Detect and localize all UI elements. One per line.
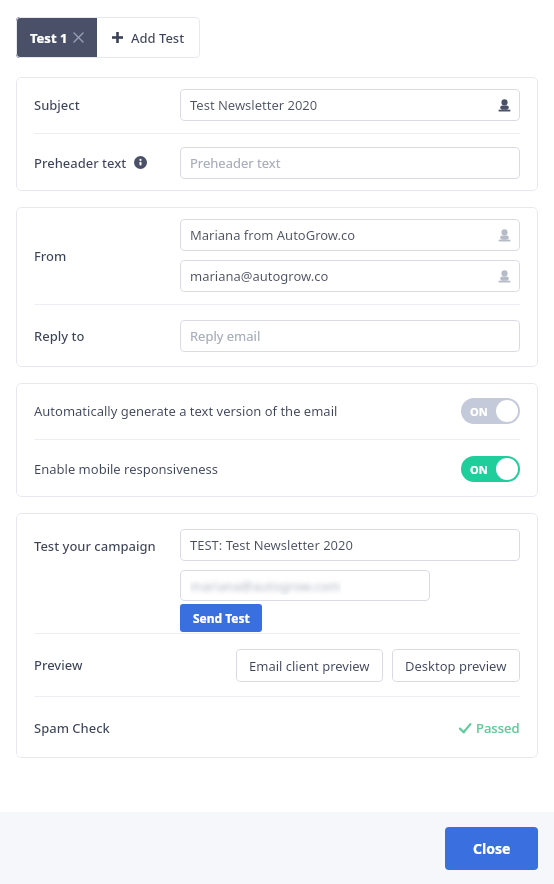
staticText: Reply to: [34, 327, 85, 345]
staticText: Close: [473, 839, 511, 858]
staticText: mariana@autogrow.com: [190, 577, 341, 595]
button[interactable]: Test 1: [16, 17, 97, 58]
staticText: mariana@autogrow.co: [190, 267, 329, 285]
staticText: From: [34, 247, 67, 265]
staticText: TEST: Test Newsletter 2020: [190, 536, 353, 554]
button[interactable]: mariana@autogrow.co: [180, 260, 520, 292]
button[interactable]: Test Newsletter 2020: [180, 89, 520, 121]
button[interactable]: Email client preview: [236, 649, 383, 682]
staticText: Preheader text: [34, 154, 127, 172]
button[interactable]: Toggle on: [461, 456, 520, 482]
staticText: Automatically generate a text version of…: [34, 402, 338, 420]
button[interactable]: TEST: Test Newsletter 2020: [180, 529, 520, 561]
button[interactable]: Toggle: [461, 398, 520, 424]
button[interactable]: Send Test: [180, 604, 262, 632]
staticText: Preheader text: [190, 154, 281, 172]
staticText: Desktop preview: [405, 657, 507, 675]
button[interactable]: Reply email: [180, 320, 520, 352]
staticText: Email client preview: [249, 657, 370, 675]
staticText: ON: [470, 462, 488, 477]
staticText: Mariana from AutoGrow.co: [190, 226, 356, 244]
staticText: Spam Check: [34, 719, 110, 737]
button[interactable]: Desktop preview: [392, 649, 520, 682]
button[interactable]: Add Test: [97, 17, 200, 58]
staticText: Send Test: [193, 610, 250, 626]
button[interactable]: mariana@autogrow.com: [180, 570, 430, 601]
staticText: Test your campaign: [34, 537, 156, 555]
other: Info: [134, 156, 147, 169]
other: Close tab: [74, 33, 83, 42]
staticText: Subject: [34, 96, 80, 114]
button[interactable]: Preheader text: [180, 147, 520, 179]
staticText: ON: [470, 404, 488, 419]
button[interactable]: Automatically generate a text version of…: [16, 383, 538, 439]
staticText: Reply email: [190, 327, 261, 345]
staticText: Passed: [476, 719, 520, 737]
button[interactable]: Mariana from AutoGrow.co: [180, 219, 520, 251]
staticText: Preview: [34, 656, 83, 674]
button[interactable]: Enable mobile responsiveness: [16, 440, 538, 497]
button[interactable]: Close: [445, 827, 538, 870]
staticText: Enable mobile responsiveness: [34, 460, 218, 478]
staticText: Add Test: [131, 29, 185, 47]
staticText: Test 1: [30, 29, 68, 47]
staticText: Test Newsletter 2020: [190, 96, 318, 114]
